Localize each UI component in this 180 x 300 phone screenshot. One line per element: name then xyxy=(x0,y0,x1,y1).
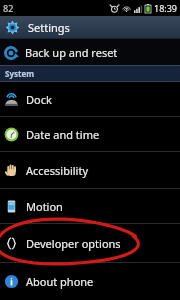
staticText: Date and time xyxy=(26,127,100,142)
staticText: Motion xyxy=(26,199,63,214)
staticText: Developer options xyxy=(26,236,121,251)
button[interactable]: Accessibility xyxy=(0,152,180,188)
button[interactable]: Dock xyxy=(0,82,180,116)
button[interactable]: Date and time xyxy=(0,117,180,151)
button[interactable]: Settings xyxy=(0,16,180,38)
button[interactable]: About phone xyxy=(0,263,180,299)
staticText: About phone xyxy=(26,274,94,289)
staticText: Dock xyxy=(26,92,52,107)
staticText: 18:39 xyxy=(154,2,178,14)
staticText: Settings xyxy=(28,20,70,35)
staticText: System xyxy=(5,68,35,79)
button[interactable]: Developer options xyxy=(0,224,180,262)
staticText: 82 xyxy=(3,2,14,14)
staticText: Back up and reset xyxy=(25,45,118,60)
staticText: Accessibility xyxy=(26,163,89,178)
button[interactable]: Back up and reset xyxy=(0,39,180,65)
button[interactable]: Motion xyxy=(0,189,180,223)
